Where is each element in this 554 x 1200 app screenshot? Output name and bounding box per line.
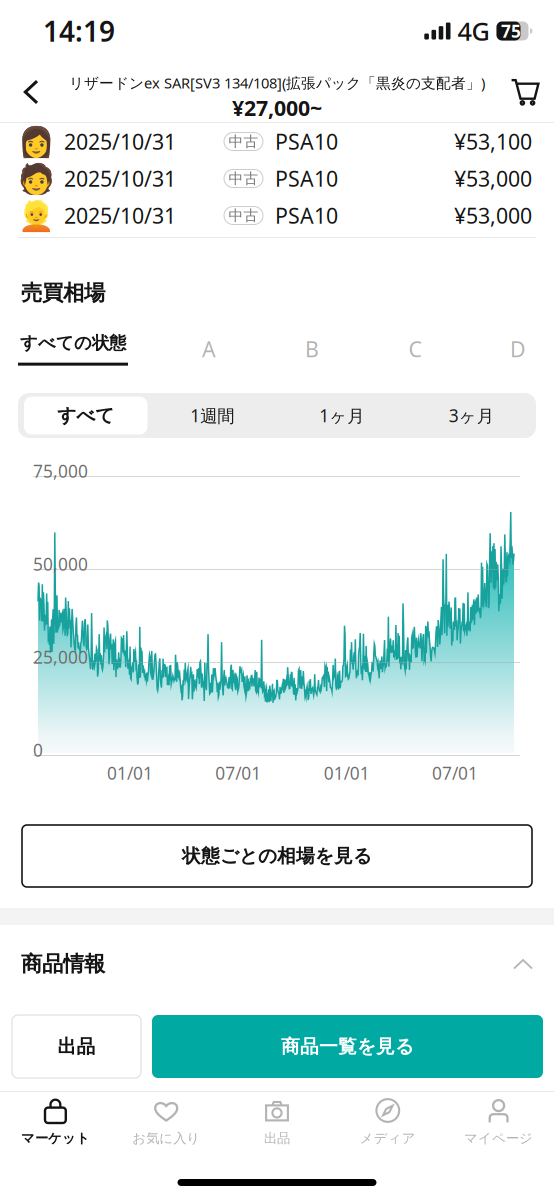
button[interactable]: Back bbox=[0, 62, 62, 122]
button[interactable]: 状態ごとの相場を見る bbox=[0, 825, 554, 887]
button[interactable]: 1ヶ月 bbox=[277, 393, 406, 438]
staticText: 75,000 bbox=[33, 459, 88, 482]
staticText: 01/01 bbox=[107, 761, 153, 784]
staticText: すべて bbox=[57, 404, 114, 427]
staticText: 2025/10/31 bbox=[64, 127, 176, 156]
button[interactable]: お気に入り bbox=[111, 1092, 222, 1154]
button[interactable]: 3ヶ月 bbox=[406, 393, 536, 438]
button[interactable]: すべての状態 bbox=[18, 332, 128, 366]
staticText: PSA10 bbox=[275, 164, 338, 193]
staticText: 0 bbox=[33, 738, 43, 761]
staticText: メディア bbox=[360, 1130, 416, 1146]
staticText: 商品一覧を見る bbox=[281, 1035, 414, 1058]
staticText: PSA10 bbox=[275, 201, 338, 230]
staticText: 75 bbox=[501, 19, 521, 42]
button[interactable]: マイページ bbox=[443, 1092, 554, 1154]
staticText: リザードンex SAR[SV3 134/108](拡張パック「黒炎の支配者」) bbox=[69, 73, 485, 92]
button[interactable]: 1週間 bbox=[147, 393, 277, 438]
staticText: 2025/10/31 bbox=[64, 201, 176, 230]
button[interactable]: 商品一覧を見る bbox=[152, 1015, 543, 1078]
button[interactable]: C bbox=[393, 332, 437, 366]
button[interactable]: A bbox=[187, 332, 231, 366]
staticText: PSA10 bbox=[275, 127, 338, 156]
staticText: 14:19 bbox=[43, 12, 115, 50]
staticText: 出品 bbox=[57, 1035, 95, 1058]
staticText: ¥27,000~ bbox=[232, 93, 322, 122]
staticText: D bbox=[510, 335, 526, 363]
staticText: 4G bbox=[457, 14, 489, 48]
staticText: 中古 bbox=[228, 169, 258, 187]
staticText: 状態ごとの相場を見る bbox=[182, 844, 372, 867]
staticText: 売買相場 bbox=[21, 280, 105, 306]
staticText: 2025/10/31 bbox=[64, 164, 176, 193]
staticText: 50,000 bbox=[33, 552, 88, 575]
button[interactable]: Cart bbox=[496, 62, 554, 122]
staticText: B bbox=[305, 335, 319, 363]
staticText: ¥53,100 bbox=[454, 127, 532, 156]
button[interactable]: マーケット bbox=[0, 1092, 111, 1154]
staticText: マイページ bbox=[464, 1130, 533, 1146]
staticText: 出品 bbox=[264, 1130, 290, 1146]
button[interactable]: メディア bbox=[332, 1092, 443, 1154]
staticText: A bbox=[202, 335, 216, 363]
button[interactable]: B bbox=[290, 332, 334, 366]
staticText: 👩 bbox=[17, 125, 54, 158]
staticText: マーケット bbox=[21, 1130, 90, 1146]
button[interactable]: 商品情報 bbox=[0, 937, 554, 991]
staticText: ¥53,000 bbox=[454, 164, 532, 193]
staticText: 25,000 bbox=[33, 645, 88, 668]
staticText: お気に入り bbox=[132, 1130, 200, 1146]
staticText: 1週間 bbox=[190, 404, 234, 427]
staticText: 07/01 bbox=[215, 761, 261, 784]
staticText: 07/01 bbox=[432, 761, 478, 784]
staticText: 🧑 bbox=[17, 162, 54, 195]
staticText: 👱 bbox=[17, 199, 54, 232]
staticText: 01/01 bbox=[324, 761, 370, 784]
staticText: ¥53,000 bbox=[454, 201, 532, 230]
button[interactable]: 出品 bbox=[222, 1092, 332, 1154]
staticText: 中古 bbox=[228, 206, 258, 224]
button[interactable]: 出品 bbox=[12, 1015, 141, 1078]
staticText: 1ヶ月 bbox=[319, 404, 364, 427]
button[interactable]: すべて bbox=[18, 393, 147, 438]
staticText: 3ヶ月 bbox=[449, 404, 494, 427]
staticText: 商品情報 bbox=[21, 951, 105, 977]
staticText: 中古 bbox=[228, 132, 258, 150]
staticText: すべての状態 bbox=[20, 332, 126, 354]
button[interactable]: D bbox=[496, 332, 540, 366]
staticText: C bbox=[408, 335, 421, 363]
